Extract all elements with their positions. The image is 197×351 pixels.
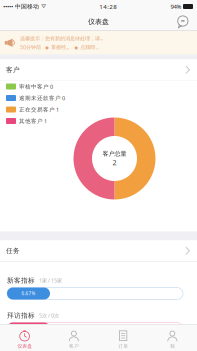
staticText: 审核中客户 0	[19, 83, 53, 90]
staticText: 5次 / 0次	[39, 312, 59, 319]
button[interactable]: 订单	[98, 324, 148, 351]
staticText: 客户	[69, 343, 79, 349]
staticText: 仪表盘	[88, 17, 109, 26]
staticText: 94%	[170, 2, 181, 10]
staticText: 1家 / 15家	[39, 277, 62, 284]
staticText: 我	[170, 343, 175, 349]
staticText: •••••	[3, 2, 13, 11]
staticText: 订单	[118, 343, 128, 349]
staticText: 正在交易客户 1	[19, 106, 59, 113]
staticText: 客户	[6, 66, 20, 74]
staticText: 0%	[25, 325, 32, 332]
staticText: ◆ 点我即刻查看	[74, 44, 99, 51]
staticText: 仪表盘	[17, 343, 32, 349]
staticText: 50分钟前	[20, 44, 41, 51]
staticText: 逾期未还款客户 0	[19, 94, 65, 102]
staticText: 中国移动	[13, 3, 41, 10]
staticText: 新客指标	[7, 276, 35, 285]
staticText: 其他客户 1	[19, 117, 47, 125]
staticText: ◆ 掌握经营情况	[45, 44, 70, 51]
button[interactable]: 仪表盘	[0, 324, 49, 351]
button[interactable]: 我	[148, 324, 197, 351]
staticText: 6.67%	[21, 290, 35, 297]
button[interactable]: 消息	[172, 13, 194, 31]
staticText: 14:28	[99, 2, 117, 11]
button[interactable]: 温馨提示：您有新的消息待处理，请及时关注	[0, 31, 197, 54]
staticText: 拜访指标	[7, 311, 35, 320]
staticText: 客户总量	[102, 150, 126, 157]
staticText: 2	[112, 157, 116, 167]
staticText: ᗊ	[41, 4, 46, 9]
staticText: 温馨提示：您有新的消息待处理，请及时关注	[20, 35, 103, 42]
button[interactable]: 客户	[0, 59, 197, 80]
staticText: 任务	[6, 247, 20, 255]
button[interactable]: 任务	[0, 240, 197, 261]
button[interactable]: 客户	[49, 324, 98, 351]
